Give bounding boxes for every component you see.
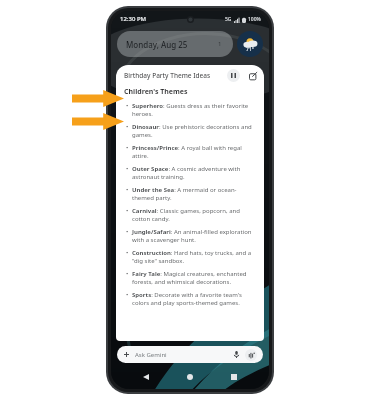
staticText: • xyxy=(126,102,129,110)
staticText: Construction: Hard hats, toy trucks, and… xyxy=(132,249,256,265)
staticText: Under the Sea: A mermaid or ocean-themed… xyxy=(132,186,256,202)
button[interactable]: Monday, Aug 25 xyxy=(117,31,233,57)
button[interactable]: Recents xyxy=(225,369,243,385)
staticText: Fairy Tale: Magical creatures, enchanted… xyxy=(132,270,256,286)
staticText: Princess/Prince: A royal ball with regal… xyxy=(132,144,256,160)
button[interactable]: Open in new xyxy=(246,69,259,82)
staticText: 5G xyxy=(225,16,232,23)
staticText: • xyxy=(126,291,129,299)
staticText: • xyxy=(126,186,129,194)
staticText: Jungle/Safari: An animal-filled explorat… xyxy=(132,228,256,244)
staticText: • xyxy=(126,207,129,215)
staticText: • xyxy=(126,270,129,278)
staticText: 1 xyxy=(218,40,222,48)
staticText: 100% xyxy=(248,16,261,23)
button[interactable]: Ask Gemini xyxy=(117,346,263,363)
button[interactable]: Voice input xyxy=(231,349,242,360)
staticText: • xyxy=(126,165,129,173)
button[interactable]: Live audio xyxy=(245,349,257,361)
staticText: • xyxy=(126,249,129,257)
staticText: Sports: Decorate with a favorite team's … xyxy=(132,291,256,307)
button[interactable]: Pause xyxy=(227,69,240,82)
staticText: 71° xyxy=(246,46,254,53)
button[interactable]: Weather xyxy=(237,31,263,57)
staticText: Birthday Party Theme Ideas xyxy=(124,71,227,80)
staticText: 12:30 PM xyxy=(120,15,147,23)
staticText: • xyxy=(126,144,129,152)
button[interactable]: Back xyxy=(137,369,155,385)
staticText: • xyxy=(126,228,129,236)
staticText: Monday, Aug 25 xyxy=(126,39,188,50)
staticText: Ask Gemini xyxy=(135,351,231,359)
staticText: Superhero: Guests dress as their favorit… xyxy=(132,102,256,118)
staticText: Children's Themes xyxy=(124,87,188,97)
staticText: • xyxy=(126,123,129,131)
staticText: Dinosaur: Use prehistoric decorations an… xyxy=(132,123,256,139)
staticText: Carnival: Classic games, popcorn, and co… xyxy=(132,207,256,223)
button[interactable]: Home xyxy=(181,369,199,385)
staticText: Outer Space: A cosmic adventure with ast… xyxy=(132,165,256,181)
